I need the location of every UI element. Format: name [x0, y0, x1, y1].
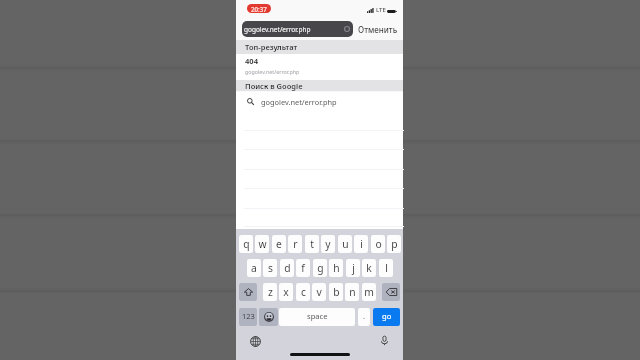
- button[interactable]: d: [280, 259, 294, 277]
- button[interactable]: e: [272, 235, 286, 253]
- staticText: gogolev.net/error.php: [261, 97, 337, 107]
- staticText: h: [333, 261, 340, 275]
- button[interactable]: v: [312, 283, 326, 301]
- button[interactable]: n: [345, 283, 359, 301]
- staticText: z: [268, 285, 273, 299]
- staticText: m: [364, 285, 374, 299]
- button[interactable]: i: [354, 235, 368, 253]
- staticText: p: [391, 237, 398, 251]
- button[interactable]: y: [321, 235, 335, 253]
- staticText: r: [293, 237, 298, 251]
- staticText: c: [301, 285, 306, 299]
- button[interactable]: space: [279, 308, 355, 326]
- button[interactable]: j: [346, 259, 360, 277]
- button[interactable]: o: [371, 235, 385, 253]
- button[interactable]: g: [313, 259, 327, 277]
- button[interactable]: gogolev.net/error.php: [242, 21, 353, 37]
- staticText: v: [316, 285, 322, 299]
- staticText: i: [360, 237, 363, 251]
- staticText: LTE: [376, 6, 386, 14]
- button[interactable]: c: [296, 283, 310, 301]
- staticText: d: [284, 261, 291, 275]
- staticText: gogolev.net/error.php: [245, 68, 300, 75]
- button[interactable]: 123: [239, 308, 257, 326]
- button[interactable]: Shift: [239, 283, 257, 301]
- button[interactable]: u: [338, 235, 352, 253]
- staticText: n: [349, 285, 356, 299]
- button[interactable]: go: [373, 308, 400, 326]
- staticText: y: [325, 237, 331, 251]
- staticText: .: [363, 311, 366, 321]
- staticText: 20:37: [251, 5, 267, 13]
- staticText: go: [382, 311, 392, 321]
- staticText: w: [258, 237, 267, 251]
- staticText: Поиск в Google: [245, 81, 303, 91]
- staticText: q: [243, 237, 250, 251]
- button[interactable]: [236, 208, 403, 227]
- button[interactable]: x: [279, 283, 293, 301]
- staticText: Топ-результат: [245, 42, 298, 52]
- button[interactable]: h: [329, 259, 343, 277]
- staticText: gogolev.net/error.php: [244, 25, 311, 34]
- staticText: g: [317, 261, 324, 275]
- staticText: e: [276, 237, 282, 251]
- button[interactable]: Change keyboard: [250, 336, 261, 347]
- button[interactable]: a: [247, 259, 261, 277]
- staticText: a: [251, 261, 257, 275]
- button[interactable]: w: [255, 235, 269, 253]
- staticText: f: [301, 261, 305, 275]
- button[interactable]: .: [358, 308, 370, 326]
- button[interactable]: Отменить: [357, 21, 399, 37]
- staticText: space: [307, 311, 328, 321]
- staticText: Отменить: [358, 24, 398, 35]
- button[interactable]: Dictation: [379, 335, 390, 346]
- staticText: o: [375, 237, 382, 251]
- staticText: s: [268, 261, 273, 275]
- staticText: b: [333, 285, 340, 299]
- button[interactable]: 404: [236, 54, 403, 81]
- staticText: x: [283, 285, 289, 299]
- staticText: l: [385, 261, 388, 275]
- button[interactable]: s: [263, 259, 277, 277]
- button[interactable]: gogolev.net/error.php: [236, 92, 403, 130]
- staticText: j: [352, 261, 355, 275]
- button[interactable]: q: [239, 235, 253, 253]
- button[interactable]: z: [263, 283, 277, 301]
- staticText: k: [366, 261, 372, 275]
- button[interactable]: p: [387, 235, 401, 253]
- button[interactable]: f: [296, 259, 310, 277]
- staticText: 123: [242, 311, 255, 321]
- staticText: t: [310, 237, 314, 251]
- button[interactable]: r: [288, 235, 302, 253]
- button[interactable]: l: [379, 259, 393, 277]
- button[interactable]: k: [362, 259, 376, 277]
- button[interactable]: b: [329, 283, 343, 301]
- button[interactable]: Emoji: [259, 308, 278, 326]
- staticText: 404: [245, 56, 259, 66]
- button[interactable]: m: [362, 283, 376, 301]
- staticText: u: [342, 237, 349, 251]
- button[interactable]: t: [305, 235, 319, 253]
- button[interactable]: Backspace: [382, 283, 400, 301]
